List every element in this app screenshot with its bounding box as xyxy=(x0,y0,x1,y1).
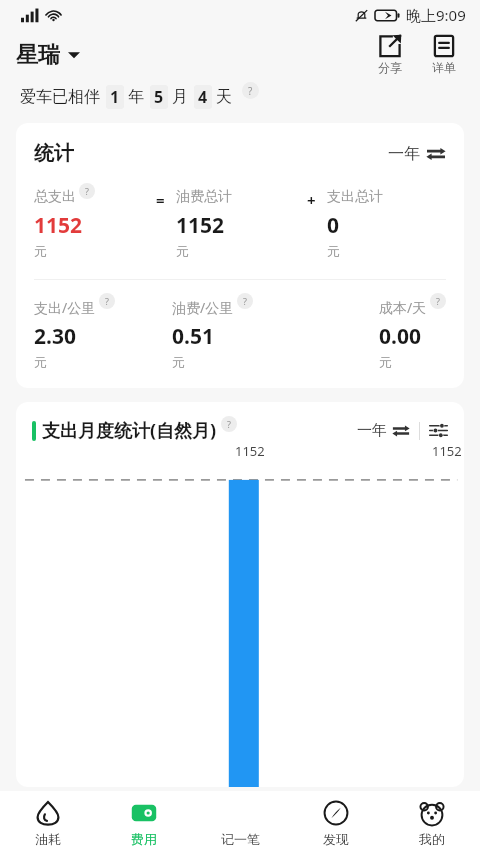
staticText: ? xyxy=(243,295,247,307)
staticText: 年 xyxy=(128,87,144,107)
button[interactable]: Help xyxy=(221,416,237,432)
button[interactable]: Help xyxy=(237,293,253,309)
staticText: 爱车已相伴 xyxy=(20,87,100,107)
staticText: 成本/天 xyxy=(379,298,427,317)
button[interactable]: 油耗 xyxy=(0,792,96,853)
staticText: 支出总计 xyxy=(327,188,383,206)
staticText: 一年 xyxy=(388,144,420,164)
staticText: 5 xyxy=(154,86,164,108)
button[interactable]: Help xyxy=(242,82,259,99)
staticText: 支出月度统计(自然月) xyxy=(42,418,217,443)
button[interactable]: Help xyxy=(430,293,446,309)
button[interactable]: 一年 xyxy=(357,421,410,440)
button[interactable]: 记一笔 xyxy=(192,792,288,853)
button[interactable]: 发现 xyxy=(288,792,384,853)
staticText: ? xyxy=(436,295,440,307)
button[interactable]: Help xyxy=(99,293,115,309)
button[interactable]: 星瑞 xyxy=(16,41,80,69)
button[interactable]: 一年 xyxy=(388,144,446,164)
staticText: 元 xyxy=(34,243,47,259)
staticText: 元 xyxy=(176,243,189,259)
staticText: 月 xyxy=(172,87,188,107)
staticText: 元 xyxy=(34,354,47,370)
button[interactable]: 详单 Details xyxy=(424,34,464,75)
button[interactable]: 分享 Share xyxy=(370,34,410,75)
staticText: ? xyxy=(248,84,253,98)
staticText: 油费总计 xyxy=(176,188,232,206)
staticText: 油费/公里 xyxy=(172,298,234,317)
staticText: 统计 xyxy=(34,141,74,166)
staticText: 元 xyxy=(327,243,340,259)
staticText: 2.30 xyxy=(34,322,76,351)
staticText: 天 xyxy=(216,87,232,107)
staticText: 星瑞 xyxy=(16,41,60,69)
staticText: 详单 xyxy=(432,60,456,75)
staticText: 发现 xyxy=(323,831,349,847)
staticText: = xyxy=(156,190,165,210)
staticText: 4 xyxy=(198,86,208,108)
staticText: 油耗 xyxy=(35,831,61,847)
staticText: ? xyxy=(227,418,231,430)
staticText: 0.51 xyxy=(172,322,214,351)
staticText: 一年 xyxy=(357,421,387,440)
staticText: ? xyxy=(105,295,109,307)
button[interactable]: 我的 xyxy=(384,792,480,853)
staticText: 元 xyxy=(172,354,185,370)
staticText: 1152 xyxy=(235,442,265,460)
staticText: 总支出 xyxy=(34,188,76,206)
staticText: 费用 xyxy=(131,831,157,847)
staticText: 1152 xyxy=(176,211,225,240)
staticText: 分享 xyxy=(378,60,402,75)
staticText: 晚上9:09 xyxy=(406,5,466,25)
button[interactable]: Help xyxy=(79,183,95,199)
button[interactable]: 费用 xyxy=(96,792,192,853)
staticText: 记一笔 xyxy=(221,831,260,847)
button[interactable]: 筛选 Filter xyxy=(429,421,448,440)
staticText: 0 xyxy=(327,211,340,240)
staticText: 我的 xyxy=(419,831,445,847)
staticText: 1152 xyxy=(34,211,83,240)
staticText: 支出/公里 xyxy=(34,298,96,317)
staticText: 0.00 xyxy=(379,322,421,351)
staticText: 1 xyxy=(110,86,120,108)
staticText: 元 xyxy=(379,354,392,370)
staticText: + xyxy=(307,190,316,210)
staticText: 1152 xyxy=(432,442,462,460)
staticText: ? xyxy=(85,185,89,197)
